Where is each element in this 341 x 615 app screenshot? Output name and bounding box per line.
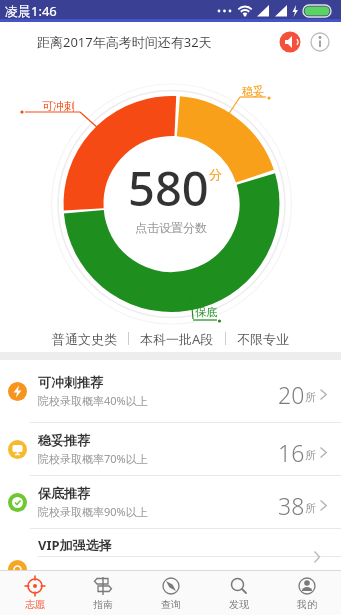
button[interactable]: 稳妥推荐: [0, 423, 341, 475]
staticText: 保底: [195, 305, 217, 319]
staticText: 稳妥推荐: [38, 432, 90, 448]
staticText: 保底推荐: [38, 485, 90, 501]
staticText: 院校录取概率90%以上: [38, 504, 148, 519]
staticText: 稳妥: [242, 84, 264, 98]
staticText: 分: [209, 166, 222, 182]
staticText: 指南: [93, 598, 113, 611]
button[interactable]: VIP加强选择: [0, 529, 341, 570]
staticText: 院校录取概率70%以上: [38, 451, 148, 466]
button[interactable]: 不限专业: [237, 331, 289, 347]
button[interactable]: 可冲刺: [0, 62, 341, 325]
button[interactable]: 普通文史类: [52, 331, 117, 347]
staticText: 580: [128, 156, 209, 220]
staticText: 距离2017年高考时间还有32天: [37, 33, 212, 51]
button[interactable]: 本科一批A段: [140, 330, 214, 348]
staticText: 查询: [161, 598, 181, 611]
button[interactable]: 志愿: [0, 571, 69, 615]
staticText: 院校录取概率40%以上: [38, 393, 148, 408]
staticText: 凌晨1:46: [5, 2, 57, 20]
staticText: 志愿: [25, 598, 45, 611]
staticText: 我的: [297, 598, 317, 611]
staticText: 所: [305, 501, 316, 515]
staticText: 发现: [229, 598, 249, 611]
button[interactable]: 发现: [205, 571, 273, 615]
button[interactable]: 我的: [273, 571, 341, 615]
staticText: 可冲刺: [42, 99, 75, 113]
staticText: 点击设置分数: [135, 220, 207, 235]
staticText: 20: [278, 379, 305, 410]
button[interactable]: 指南: [69, 571, 137, 615]
staticText: 38: [278, 490, 305, 521]
button[interactable]: 可冲刺推荐: [0, 360, 341, 422]
staticText: 所: [305, 448, 316, 462]
button[interactable]: 距离2017年高考时间还有32天: [0, 22, 341, 62]
staticText: 可冲刺推荐: [38, 374, 103, 390]
staticText: 所: [305, 390, 316, 404]
button[interactable]: 查询: [137, 571, 205, 615]
button[interactable]: 保底推荐: [0, 476, 341, 528]
staticText: VIP加强选择: [38, 536, 112, 554]
staticText: 16: [278, 437, 305, 468]
